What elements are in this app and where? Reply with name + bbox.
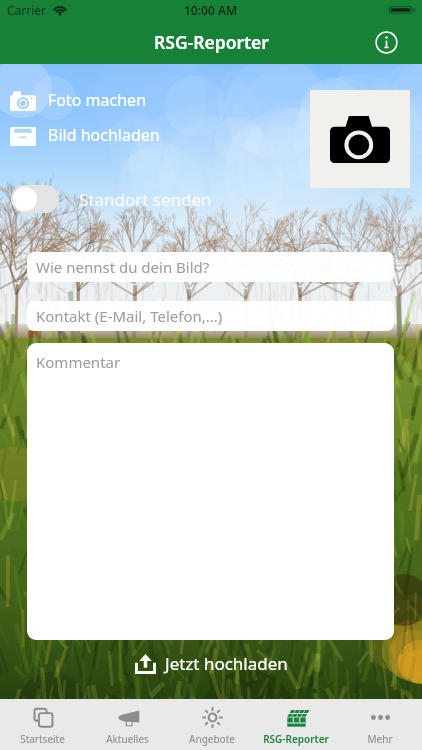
button[interactable]: Aufgenommenes Foto: [310, 90, 410, 188]
staticText: Standort senden: [79, 188, 212, 211]
staticText: Kontakt (E-Mail, Telefon,...): [36, 306, 223, 326]
staticText: Startseite: [20, 732, 65, 746]
button[interactable]: Startseite: [0, 699, 85, 750]
staticText: Bild hochladen: [48, 124, 160, 146]
button[interactable]: Wie nennst du dein Bild?: [27, 252, 394, 282]
staticText: Foto machen: [48, 89, 147, 111]
button[interactable]: Standort senden: [0, 184, 230, 214]
button[interactable]: Jetzt hochladen: [135, 648, 288, 678]
button[interactable]: Mehr: [338, 699, 422, 750]
button[interactable]: Kommentar: [27, 343, 394, 640]
button[interactable]: Bild hochladen: [0, 121, 205, 149]
button[interactable]: Angebote: [170, 699, 254, 750]
staticText: Kommentar: [36, 352, 121, 372]
staticText: Carrier: [7, 2, 47, 18]
staticText: Wie nennst du dein Bild?: [36, 257, 210, 277]
staticText: RSG-Reporter: [263, 732, 329, 746]
staticText: Jetzt hochladen: [165, 652, 288, 675]
staticText: Aktuelles: [106, 732, 149, 746]
staticText: 10:00 AM: [184, 2, 238, 18]
button[interactable]: Kontakt (E-Mail, Telefon,...): [27, 301, 394, 331]
staticText: Mehr: [367, 732, 393, 746]
staticText: RSG-Reporter: [154, 30, 269, 54]
button[interactable]: Aktuelles: [85, 699, 170, 750]
staticText: Angebote: [189, 732, 235, 746]
button[interactable]: Info: [371, 27, 401, 57]
button[interactable]: Standort senden: [11, 185, 59, 213]
button[interactable]: RSG-Reporter: [254, 699, 338, 750]
button[interactable]: Foto machen: [0, 86, 190, 114]
